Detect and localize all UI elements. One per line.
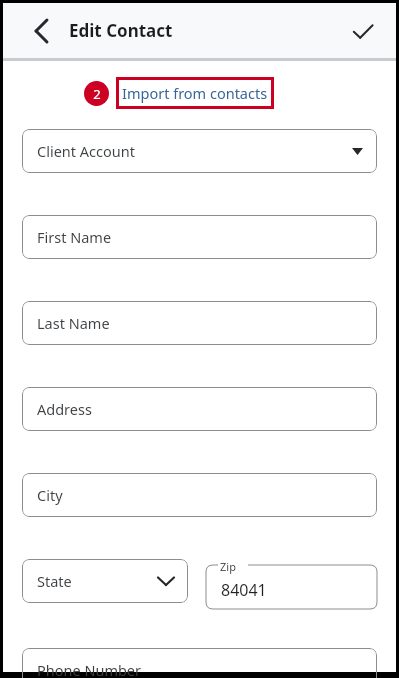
button[interactable]: Last Name <box>22 301 377 345</box>
staticText: Edit Contact <box>69 19 173 42</box>
staticText: Phone Number <box>37 660 142 678</box>
staticText: First Name <box>37 227 112 247</box>
staticText: State <box>37 571 72 591</box>
staticText: Address <box>37 399 92 419</box>
button[interactable]: Back <box>23 13 59 49</box>
staticText: Zip <box>220 559 236 574</box>
button[interactable]: City <box>22 473 377 517</box>
staticText: Last Name <box>37 313 110 333</box>
button[interactable]: State <box>22 559 188 603</box>
button[interactable]: Address <box>22 387 377 431</box>
button[interactable]: Save <box>343 11 383 51</box>
staticText: 84041 <box>221 579 267 601</box>
button[interactable]: Zip <box>206 559 377 609</box>
staticText: Client Account <box>37 141 135 161</box>
staticText: 2 <box>93 85 101 103</box>
button[interactable]: Phone Number <box>22 648 377 678</box>
button[interactable]: First Name <box>22 215 377 259</box>
staticText: Import from contacts <box>122 83 268 103</box>
button[interactable]: Import from contacts <box>116 77 274 109</box>
button[interactable]: Client Account <box>22 129 377 173</box>
staticText: City <box>37 485 63 505</box>
